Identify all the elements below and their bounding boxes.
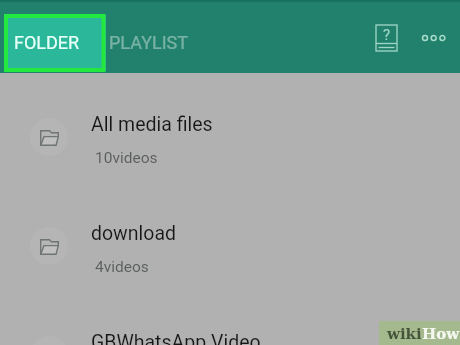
staticText: download	[91, 222, 177, 245]
staticText: 4videos	[95, 258, 149, 276]
staticText: All media files	[91, 113, 213, 136]
button[interactable]: More options	[410, 14, 458, 62]
button[interactable]: FOLDER	[5, 15, 106, 71]
button[interactable]: download	[0, 193, 460, 302]
button[interactable]: GBWhatsApp Video	[0, 302, 460, 345]
button[interactable]: Help	[362, 14, 410, 62]
button[interactable]: All media files	[0, 84, 460, 193]
staticText: ?	[383, 26, 391, 44]
staticText: PLAYLIST	[109, 32, 188, 53]
staticText: FOLDER	[14, 32, 80, 53]
staticText: wiki	[387, 325, 422, 343]
staticText: GBWhatsApp Video	[91, 331, 261, 345]
staticText: 10videos	[95, 149, 158, 167]
button[interactable]: PLAYLIST	[107, 15, 203, 72]
staticText: How	[422, 325, 460, 343]
